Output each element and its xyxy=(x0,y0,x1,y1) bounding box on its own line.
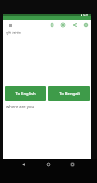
button[interactable]: Translate xyxy=(81,20,91,30)
button[interactable]: To English xyxy=(5,86,46,101)
button[interactable]: Back xyxy=(18,159,28,169)
staticText: where are you xyxy=(6,104,35,110)
button[interactable]: Clear text xyxy=(58,20,68,30)
button[interactable]: Menu xyxy=(5,20,15,30)
staticText: 9:41 xyxy=(83,14,89,16)
button[interactable]: Recents xyxy=(67,159,77,169)
button[interactable]: Home xyxy=(43,159,53,169)
button[interactable]: To Bengali xyxy=(48,86,90,101)
staticText: To English xyxy=(15,91,36,97)
staticText: To Bengali xyxy=(59,91,80,97)
staticText: তুমি কোথায় xyxy=(6,30,21,36)
button[interactable]: Share xyxy=(70,20,80,30)
button[interactable]: Voice input xyxy=(47,20,57,30)
